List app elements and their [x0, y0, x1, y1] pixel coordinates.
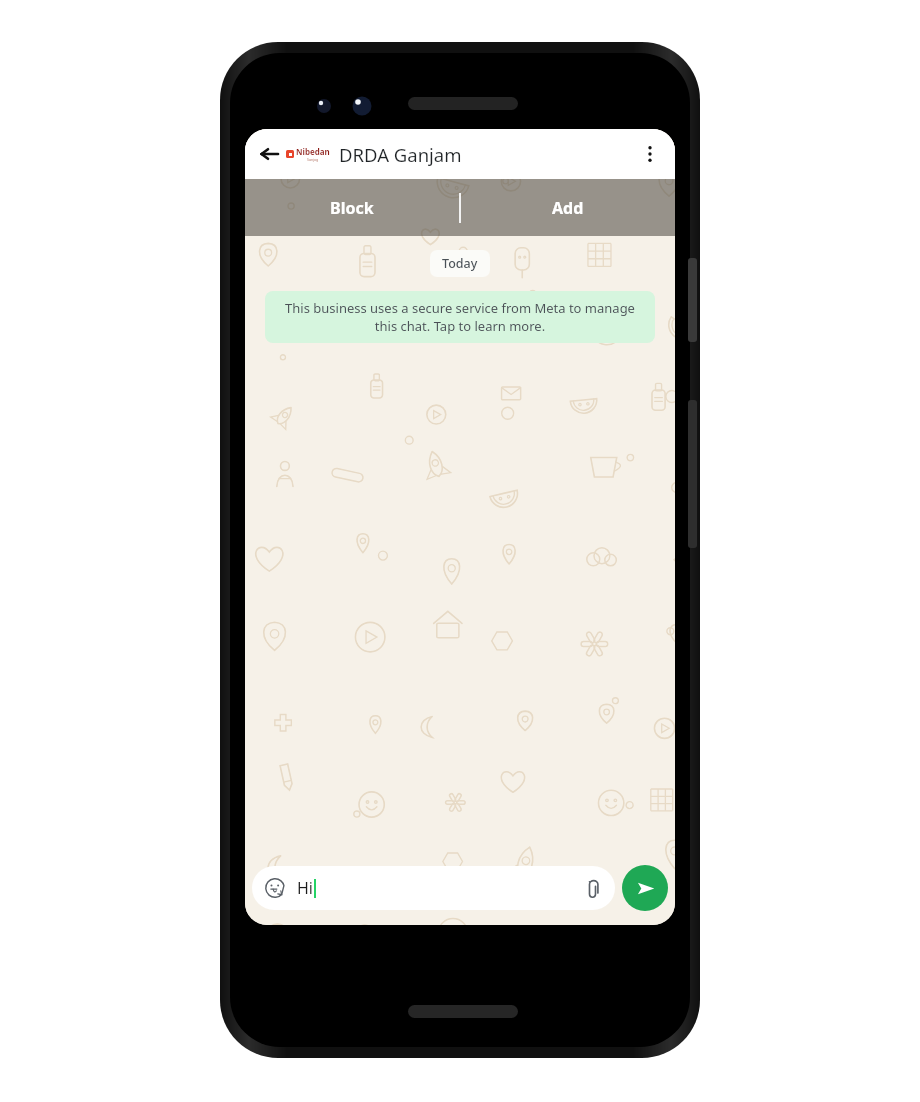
button[interactable]: Stickers [262, 875, 288, 901]
button[interactable]: Today [430, 250, 490, 277]
button[interactable]: Back [254, 139, 284, 169]
button[interactable]: More options [637, 134, 663, 174]
staticText: Nibedan [296, 146, 330, 157]
staticText: Block [330, 197, 374, 219]
staticText: Add [552, 197, 584, 219]
staticText: DRDA Ganjam [339, 142, 462, 167]
button[interactable]: DRDA Ganjam [339, 129, 637, 179]
staticText: This business uses a secure service from… [276, 299, 644, 335]
staticText: Today [442, 255, 478, 272]
button[interactable]: Stickers [252, 866, 615, 910]
button[interactable]: Block [245, 179, 459, 236]
staticText: Hi [297, 877, 313, 899]
button[interactable]: Attach [579, 875, 605, 901]
button[interactable]: Add [461, 179, 675, 236]
staticText: Sanjog [307, 157, 319, 162]
button[interactable]: Send [622, 865, 668, 911]
button[interactable]: Profile photo [285, 143, 331, 165]
button[interactable]: This business uses a secure service from… [265, 291, 655, 343]
